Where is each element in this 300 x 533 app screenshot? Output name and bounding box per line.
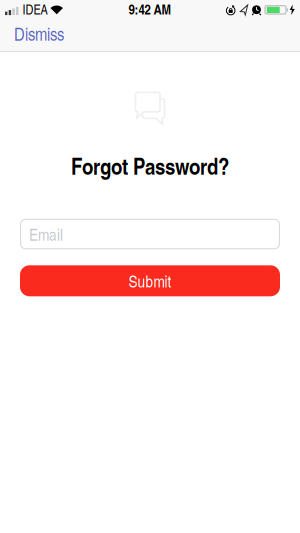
staticText: Email bbox=[29, 223, 63, 245]
staticText: Forgot Password? bbox=[71, 150, 229, 182]
staticText: IDEA bbox=[22, 0, 47, 18]
staticText: 9:42 AM bbox=[128, 0, 171, 19]
staticText: Submit bbox=[128, 269, 171, 292]
staticText: Dismiss bbox=[14, 21, 64, 46]
button[interactable]: Dismiss bbox=[0, 17, 64, 54]
button[interactable]: Submit bbox=[20, 265, 280, 296]
button[interactable]: Email bbox=[20, 219, 280, 249]
